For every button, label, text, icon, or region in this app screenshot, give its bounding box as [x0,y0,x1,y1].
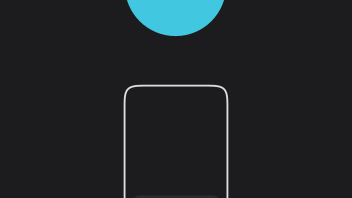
button[interactable]: Ping iPhone [0,0,352,198]
